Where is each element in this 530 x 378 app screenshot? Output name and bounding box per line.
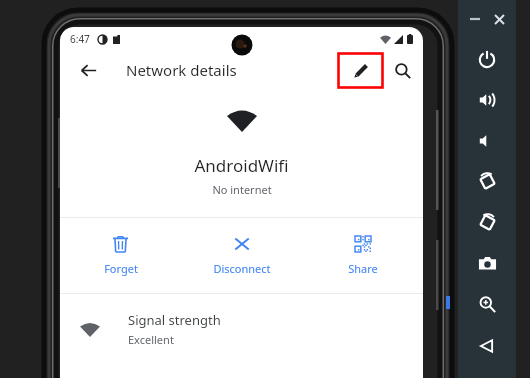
button[interactable]: Signal strength <box>60 294 423 364</box>
button[interactable]: Minimize <box>468 12 482 26</box>
button[interactable]: Disconnect <box>181 218 302 293</box>
button[interactable]: Close <box>492 12 506 26</box>
staticText: Network details <box>126 60 237 80</box>
staticText: AndroidWifi <box>194 154 289 177</box>
staticText: Signal strength <box>128 311 221 329</box>
staticText: Share <box>348 261 378 276</box>
button[interactable]: Rotate left <box>458 161 516 202</box>
button[interactable]: Search <box>387 55 419 87</box>
button[interactable]: Volume up <box>458 79 516 120</box>
button[interactable]: Power <box>458 38 516 79</box>
button[interactable]: Forget <box>60 218 181 293</box>
button[interactable]: Back <box>73 55 103 85</box>
button[interactable]: Volume down <box>458 120 516 161</box>
staticText: 6:47 <box>70 32 90 46</box>
staticText: Excellent <box>128 332 174 347</box>
button[interactable]: Share <box>302 218 423 293</box>
button[interactable]: Back <box>458 325 516 366</box>
button[interactable]: Rotate right <box>458 202 516 243</box>
staticText: Disconnect <box>213 261 271 276</box>
button[interactable]: Screenshot <box>458 243 516 284</box>
button[interactable]: Zoom <box>458 284 516 325</box>
button[interactable]: Edit <box>338 53 383 88</box>
staticText: Forget <box>104 261 138 276</box>
staticText: No internet <box>212 182 272 197</box>
